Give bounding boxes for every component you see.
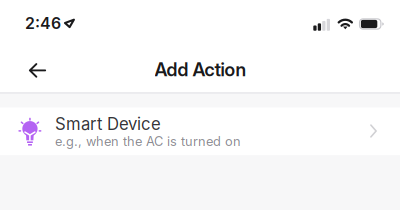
button[interactable]: Smart Device — [0, 107, 400, 155]
staticText: Smart Device — [55, 114, 161, 134]
staticText: e.g., when the AC is turned on — [55, 134, 241, 149]
staticText: 2:46 — [25, 14, 61, 33]
button[interactable]: Back — [15, 48, 59, 92]
staticText: Add Action — [155, 58, 247, 81]
